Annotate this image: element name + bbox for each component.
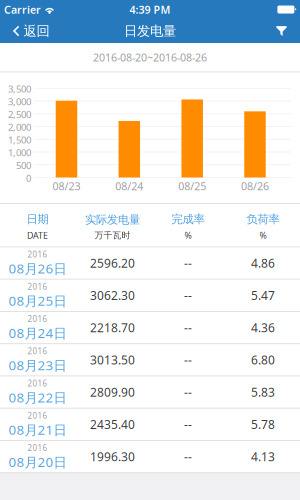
button[interactable]: 2016 xyxy=(0,247,300,279)
staticText: 4.36 xyxy=(251,320,275,336)
staticText: 5.78 xyxy=(251,416,275,432)
staticText: Carrier xyxy=(4,2,41,17)
staticText: 2,000 xyxy=(8,120,31,134)
staticText: 日期 xyxy=(26,212,48,226)
staticText: 日发电量 xyxy=(124,23,176,39)
staticText: 1996.30 xyxy=(90,449,135,465)
staticText: 返回 xyxy=(24,23,50,39)
staticText: 0 xyxy=(26,171,31,185)
button[interactable]: 2016 xyxy=(0,344,300,375)
staticText: 08/25 xyxy=(178,179,206,193)
staticText: 08/24 xyxy=(115,179,143,193)
staticText: 2435.40 xyxy=(90,416,135,432)
button[interactable]: 2016 xyxy=(0,409,300,440)
staticText: 2016 xyxy=(27,313,47,324)
staticText: 2016 xyxy=(27,442,47,453)
staticText: 08月25日 xyxy=(8,292,66,309)
staticText: 08月22日 xyxy=(8,389,66,406)
staticText: 2016 xyxy=(27,410,47,421)
staticText: 08月23日 xyxy=(8,356,66,374)
staticText: 08月24日 xyxy=(8,324,66,342)
staticText: % xyxy=(184,229,191,241)
staticText: 万千瓦时 xyxy=(94,230,130,241)
staticText: -- xyxy=(184,384,192,400)
staticText: 1,500 xyxy=(8,133,31,146)
staticText: DATE xyxy=(27,229,48,241)
button[interactable]: 2016-08-20~2016-08-26 xyxy=(0,43,300,71)
staticText: 08/26 xyxy=(241,179,269,193)
button[interactable]: 2016 xyxy=(0,376,300,408)
staticText: 5.83 xyxy=(251,384,275,400)
button[interactable]: 2016 xyxy=(0,280,300,311)
staticText: 2809.90 xyxy=(90,384,135,400)
staticText: 完成率 xyxy=(171,212,204,226)
staticText: 5.47 xyxy=(251,287,275,303)
staticText: 08月26日 xyxy=(8,260,66,277)
staticText: 3013.50 xyxy=(90,352,135,368)
staticText: 2016 xyxy=(27,281,47,292)
staticText: 3062.30 xyxy=(90,287,135,303)
staticText: 2016-08-20~2016-08-26 xyxy=(93,50,207,64)
staticText: -- xyxy=(184,352,192,368)
staticText: 4.86 xyxy=(251,255,275,271)
staticText: 1,000 xyxy=(8,146,31,159)
staticText: 2016 xyxy=(27,249,47,260)
staticText: 2016 xyxy=(27,378,47,389)
staticText: 4:39 PM xyxy=(129,2,170,17)
button[interactable]: 2016 xyxy=(0,441,300,472)
staticText: 500 xyxy=(16,159,31,172)
button[interactable]: 2016 xyxy=(0,312,300,343)
staticText: 3,000 xyxy=(8,95,31,108)
staticText: 2218.70 xyxy=(90,320,135,336)
staticText: 08月21日 xyxy=(8,421,66,438)
staticText: 2,500 xyxy=(8,108,31,121)
staticText: 2016 xyxy=(27,346,47,356)
staticText: -- xyxy=(184,449,192,465)
button[interactable]: Filter xyxy=(268,19,300,43)
staticText: 08/23 xyxy=(52,179,80,193)
staticText: -- xyxy=(184,287,192,303)
staticText: 4.13 xyxy=(251,449,275,465)
staticText: % xyxy=(259,229,266,241)
staticText: 2596.20 xyxy=(90,255,135,271)
staticText: 实际发电量 xyxy=(85,213,140,227)
staticText: 6.80 xyxy=(251,352,275,368)
staticText: -- xyxy=(184,255,192,271)
button[interactable]: 返回 xyxy=(0,19,58,43)
staticText: 3,500 xyxy=(8,82,31,95)
staticText: 08月20日 xyxy=(8,453,66,471)
staticText: 负荷率 xyxy=(246,212,279,226)
staticText: -- xyxy=(184,320,192,336)
staticText: -- xyxy=(184,416,192,432)
